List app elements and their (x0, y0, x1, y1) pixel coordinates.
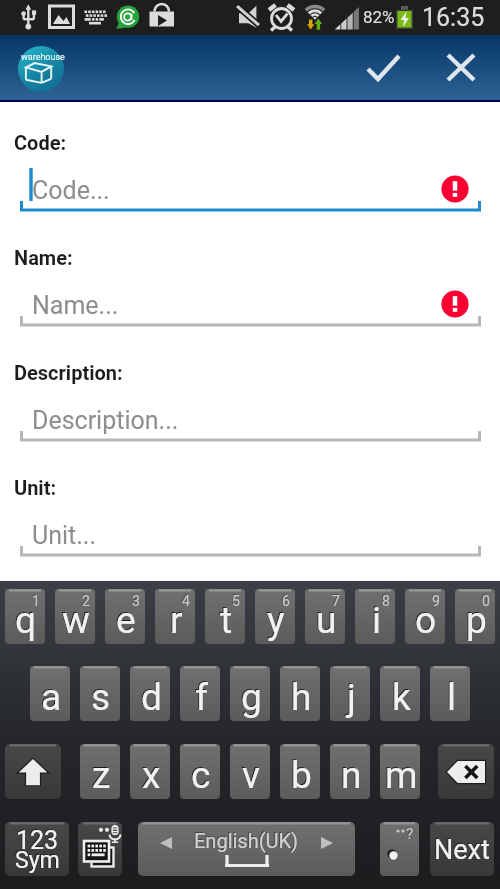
staticText: 82% (363, 7, 395, 27)
staticText: i (371, 598, 380, 641)
staticText: t (220, 599, 233, 642)
staticText: c (191, 754, 211, 797)
staticText: 6 (282, 593, 290, 609)
staticText: f (195, 676, 208, 719)
staticText: t (219, 598, 232, 641)
button[interactable]: q (5, 589, 45, 644)
staticText: Name: (14, 246, 73, 269)
button[interactable]: c (180, 744, 220, 799)
staticText: k (392, 676, 411, 719)
staticText: warehouse (21, 52, 65, 63)
staticText: 7 (332, 593, 340, 609)
staticText: 8 (381, 592, 389, 608)
staticText: d (141, 676, 162, 719)
staticText: u (315, 598, 336, 641)
staticText: e (116, 599, 136, 642)
button[interactable]: o (405, 589, 445, 644)
button[interactable]: s (80, 666, 120, 721)
button[interactable]: x (130, 744, 170, 799)
button[interactable]: i (355, 589, 395, 644)
button[interactable]: z (80, 744, 120, 799)
staticText: Description... (32, 406, 179, 435)
staticText: j (347, 676, 356, 719)
staticText: Next (434, 834, 490, 866)
staticText: 2 (81, 592, 89, 608)
staticText: s (91, 676, 111, 719)
button[interactable]: Warehouse app logo (18, 46, 64, 92)
button[interactable]: Required field (441, 290, 469, 318)
staticText: Description: (14, 361, 123, 384)
button[interactable]: 123 (5, 822, 69, 876)
staticText: q (14, 598, 36, 641)
staticText: Unit... (32, 521, 97, 550)
button[interactable]: p (455, 589, 495, 644)
button[interactable]: u (305, 589, 345, 644)
button[interactable]: Shift (5, 744, 61, 799)
staticText: ? (405, 824, 413, 842)
staticText: x (141, 753, 160, 796)
staticText: 4 (181, 592, 189, 608)
button[interactable]: y (255, 589, 295, 644)
staticText: h (291, 676, 312, 719)
button[interactable]: f (180, 666, 220, 721)
button[interactable]: g (230, 666, 270, 721)
staticText: 3 (131, 592, 139, 608)
button[interactable]: Backspace (438, 744, 494, 799)
button[interactable]: d (130, 666, 170, 721)
button[interactable]: m (380, 744, 420, 799)
button[interactable]: e (105, 589, 145, 644)
staticText: w (61, 598, 89, 641)
staticText: a (41, 676, 62, 719)
staticText: 9 (431, 592, 439, 608)
staticText: Unit: (14, 476, 57, 499)
button[interactable]: r (155, 589, 195, 644)
button[interactable]: Change keyboard (78, 822, 122, 876)
staticText: 8 (382, 593, 390, 609)
button[interactable]: v (230, 744, 270, 799)
staticText: l (447, 676, 456, 719)
staticText: u (316, 599, 337, 642)
staticText: o (414, 598, 436, 641)
staticText: p (466, 599, 487, 642)
staticText: o (415, 599, 437, 642)
staticText: 0 (482, 593, 490, 609)
button[interactable]: b (280, 744, 320, 799)
button[interactable]: t (205, 589, 245, 644)
staticText: English(UK) (193, 828, 298, 851)
button[interactable]: w (55, 589, 95, 644)
staticText: 0 (481, 592, 489, 608)
button[interactable]: Period (380, 822, 419, 876)
staticText: Code: (14, 131, 67, 154)
staticText: 123 (16, 826, 59, 855)
staticText: m (385, 754, 418, 797)
staticText: f (194, 675, 207, 718)
button[interactable]: j (330, 666, 370, 721)
staticText: 6 (281, 592, 289, 608)
button[interactable]: l (430, 666, 470, 721)
staticText: d (140, 675, 161, 718)
button[interactable]: Next (430, 822, 494, 876)
button[interactable]: h (280, 666, 320, 721)
button[interactable]: k (380, 666, 420, 721)
staticText: v (241, 753, 259, 796)
button[interactable]: a (30, 666, 70, 721)
button[interactable]: Space (138, 822, 355, 876)
staticText: j (346, 675, 355, 718)
staticText: l (446, 675, 455, 718)
button[interactable]: Required field (441, 175, 469, 203)
staticText: n (340, 753, 361, 796)
staticText: c (190, 753, 210, 796)
staticText: s (90, 675, 110, 718)
staticText: b (290, 753, 311, 796)
button[interactable]: Save (350, 35, 416, 100)
staticText: x (142, 754, 161, 797)
button[interactable]: n (330, 744, 370, 799)
staticText: h (290, 675, 311, 718)
staticText: i (372, 599, 381, 642)
staticText: 16:35 (422, 3, 485, 32)
staticText: e (115, 598, 135, 641)
staticText: 3 (132, 593, 140, 609)
button[interactable]: Cancel (428, 35, 494, 100)
staticText: Code... (32, 176, 110, 205)
staticText: w (62, 599, 90, 642)
